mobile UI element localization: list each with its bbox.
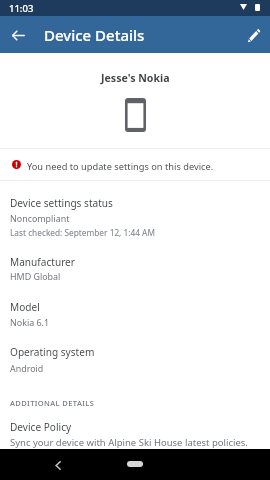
staticText: Android: [10, 362, 44, 374]
button[interactable]: Back: [4, 21, 32, 49]
staticText: Sync your device with Alpine Ski House l…: [10, 436, 248, 449]
button[interactable]: [0, 188, 270, 240]
staticText: Model: [10, 300, 40, 314]
staticText: ADDITIONAL DETAILS: [10, 398, 95, 408]
button[interactable]: [0, 246, 270, 286]
button[interactable]: [0, 291, 270, 331]
button[interactable]: [0, 337, 270, 377]
staticText: Manufacturer: [10, 255, 75, 269]
staticText: Nokia 6.1: [10, 316, 50, 328]
button[interactable]: Back: [44, 451, 72, 479]
button[interactable]: [0, 151, 270, 179]
staticText: 11:03: [9, 2, 34, 15]
staticText: Operating system: [10, 345, 95, 359]
staticText: HMD Global: [10, 270, 61, 282]
staticText: Device Details: [44, 25, 145, 45]
staticText: Last checked: September 12, 1:44 AM: [10, 227, 155, 238]
staticText: Device settings status: [10, 196, 113, 210]
button[interactable]: Edit: [240, 21, 268, 49]
staticText: Jesse's Nokia: [101, 71, 170, 85]
staticText: Noncompliant: [10, 212, 70, 224]
button[interactable]: Home: [115, 454, 155, 474]
staticText: You need to update settings on this devi…: [27, 160, 214, 173]
staticText: Device Policy: [10, 420, 72, 434]
button[interactable]: [0, 414, 270, 449]
